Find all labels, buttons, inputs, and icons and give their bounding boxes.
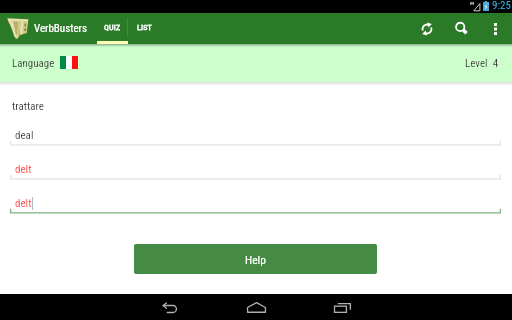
staticText: trattare xyxy=(12,100,44,113)
staticText: Level 4 xyxy=(465,57,499,70)
staticText: delt xyxy=(15,163,32,176)
staticText: VerbBusters xyxy=(34,22,87,35)
staticText: Help xyxy=(245,253,266,266)
button[interactable]: LIST xyxy=(128,13,161,44)
button[interactable]: Home xyxy=(226,294,286,320)
button[interactable]: Back xyxy=(140,294,200,320)
staticText: QUIZ xyxy=(104,23,121,32)
button[interactable]: Recent apps xyxy=(312,294,372,320)
staticText: 9:25 xyxy=(492,0,511,12)
staticText: delt xyxy=(15,197,32,210)
staticText: LIST xyxy=(137,23,152,32)
button[interactable]: More options xyxy=(482,13,508,44)
button[interactable]: Refresh xyxy=(414,13,440,44)
button[interactable]: Help xyxy=(134,244,377,274)
button[interactable]: Search xyxy=(448,13,474,44)
staticText: deal xyxy=(15,129,34,142)
staticText: Language xyxy=(12,57,55,70)
button[interactable]: QUIZ xyxy=(96,13,128,44)
